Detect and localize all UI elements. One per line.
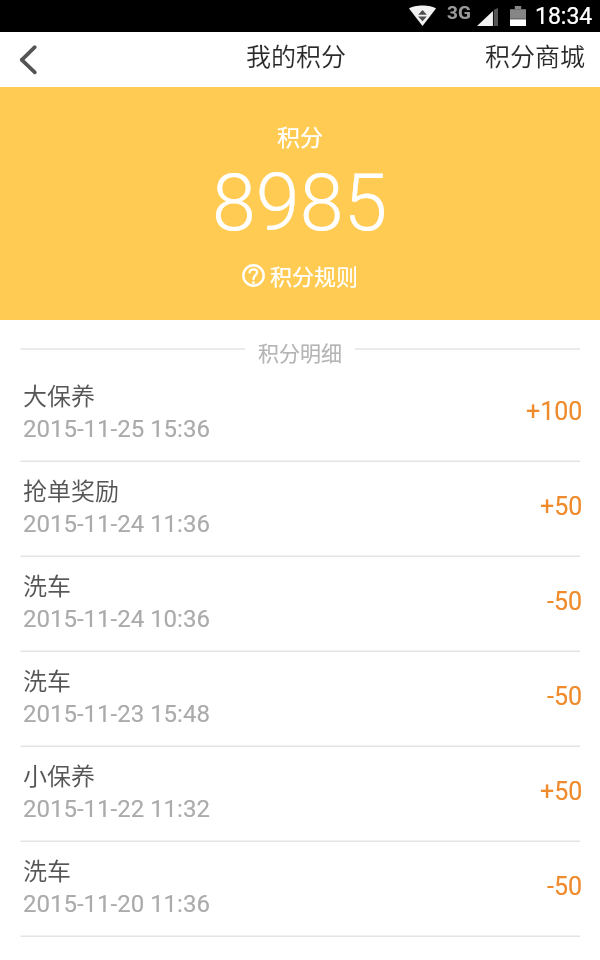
- staticText: 洗车: [23, 662, 71, 697]
- staticText: +100: [526, 397, 583, 426]
- button[interactable]: 抢单奖励: [0, 462, 600, 557]
- staticText: 我的积分: [246, 37, 347, 73]
- staticText: 洗车: [23, 852, 71, 887]
- staticText: 积分规则: [270, 259, 359, 291]
- button[interactable]: 小保养: [0, 747, 600, 842]
- button[interactable]: 洗车: [0, 652, 600, 747]
- button[interactable]: 积分商城: [0, 32, 600, 87]
- button[interactable]: 洗车: [0, 842, 600, 937]
- button[interactable]: 洗车: [0, 557, 600, 652]
- staticText: 2015-11-24 10:36: [23, 605, 210, 633]
- staticText: -50: [547, 872, 583, 901]
- staticText: 大保养: [23, 377, 95, 412]
- staticText: 积分: [277, 119, 323, 152]
- staticText: 2015-11-25 15:36: [23, 415, 210, 443]
- staticText: 积分明细: [258, 337, 342, 367]
- staticText: +50: [540, 777, 583, 806]
- button[interactable]: 大保养: [0, 367, 600, 462]
- staticText: -50: [547, 587, 583, 616]
- staticText: 洗车: [23, 567, 71, 602]
- staticText: 8985: [212, 157, 388, 250]
- staticText: 2015-11-23 15:48: [23, 700, 210, 728]
- staticText: 2015-11-20 11:36: [23, 890, 210, 918]
- button[interactable]: 积分规则: [240, 259, 361, 291]
- staticText: 2015-11-24 11:36: [23, 510, 210, 538]
- staticText: 2015-11-22 11:32: [23, 795, 210, 823]
- staticText: 18:34: [535, 3, 593, 30]
- staticText: 小保养: [23, 757, 95, 792]
- button[interactable]: Back: [0, 32, 58, 87]
- staticText: 抢单奖励: [23, 472, 119, 507]
- staticText: -50: [547, 682, 583, 711]
- staticText: 积分商城: [485, 37, 586, 73]
- staticText: 3G: [447, 1, 471, 23]
- staticText: +50: [540, 492, 583, 521]
